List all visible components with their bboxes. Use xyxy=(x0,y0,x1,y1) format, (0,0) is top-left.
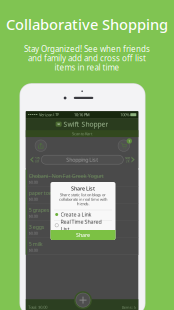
staticText: Prev xyxy=(34,156,39,160)
staticText: $0.00 xyxy=(29,180,38,185)
staticText: Swift Shopper xyxy=(63,120,108,129)
staticText: List xyxy=(126,159,130,163)
staticText: Shopping List xyxy=(66,156,98,163)
staticText: friends. xyxy=(76,201,89,206)
button[interactable]: 3 eggs xyxy=(26,221,138,238)
staticText: Items: 5 xyxy=(122,304,136,310)
staticText: Create a Link xyxy=(61,211,92,218)
button[interactable]: 5 grapes xyxy=(26,204,138,221)
staticText: $0.00 xyxy=(29,197,38,202)
staticText: Chobani - Non Fat Greek Yogurt xyxy=(29,172,104,179)
staticText: 5 grapes xyxy=(29,206,50,213)
staticText: and family add and cross off list xyxy=(28,53,146,63)
staticText: Scan to Kart xyxy=(72,131,92,136)
staticText: Share static list on blogs or xyxy=(60,192,106,197)
button[interactable]: Chobani - Non Fat Greek Yogurt xyxy=(26,170,138,187)
staticText: List xyxy=(35,159,39,163)
button[interactable]: Add item xyxy=(74,291,92,309)
button[interactable]: Cart xyxy=(118,140,132,153)
button[interactable]: Share xyxy=(50,230,115,240)
staticText: $0.00 xyxy=(29,214,38,219)
staticText: $0.00 xyxy=(29,248,38,253)
staticText: Share xyxy=(76,231,90,239)
staticText: 3 eggs xyxy=(29,223,45,230)
staticText: 10:16 PM xyxy=(74,112,90,117)
staticText: Real Time Shared List xyxy=(61,218,102,232)
button[interactable]: Share list xyxy=(35,140,47,152)
staticText: items in real time xyxy=(54,62,119,73)
staticText: Collaborative Shopping xyxy=(6,14,168,34)
button[interactable]: 5 milk xyxy=(26,238,138,255)
button[interactable]: Real Time Shared List xyxy=(55,221,113,230)
staticText: 5 milk xyxy=(29,240,43,247)
staticText: LTE xyxy=(53,112,59,117)
staticText: paper towels xyxy=(29,189,60,196)
staticText: ••••• xyxy=(28,111,38,118)
button[interactable]: Create a Link xyxy=(55,210,113,219)
button[interactable]: Next list xyxy=(123,155,137,164)
staticText: collaborate in real time with xyxy=(59,196,107,202)
button[interactable]: paper towels xyxy=(26,187,138,204)
staticText: Next xyxy=(125,156,130,160)
staticText: 100% xyxy=(120,112,129,117)
staticText: Share List xyxy=(71,185,95,192)
staticText: $0.00 xyxy=(29,231,38,236)
staticText: Verizon xyxy=(39,112,52,117)
staticText: Stay Organized! See when friends xyxy=(24,44,150,54)
staticText: 1 xyxy=(128,138,130,144)
button[interactable]: Previous list xyxy=(27,155,41,164)
staticText: Total: $0.00 xyxy=(28,304,47,310)
button[interactable]: Shopping List xyxy=(41,155,123,164)
